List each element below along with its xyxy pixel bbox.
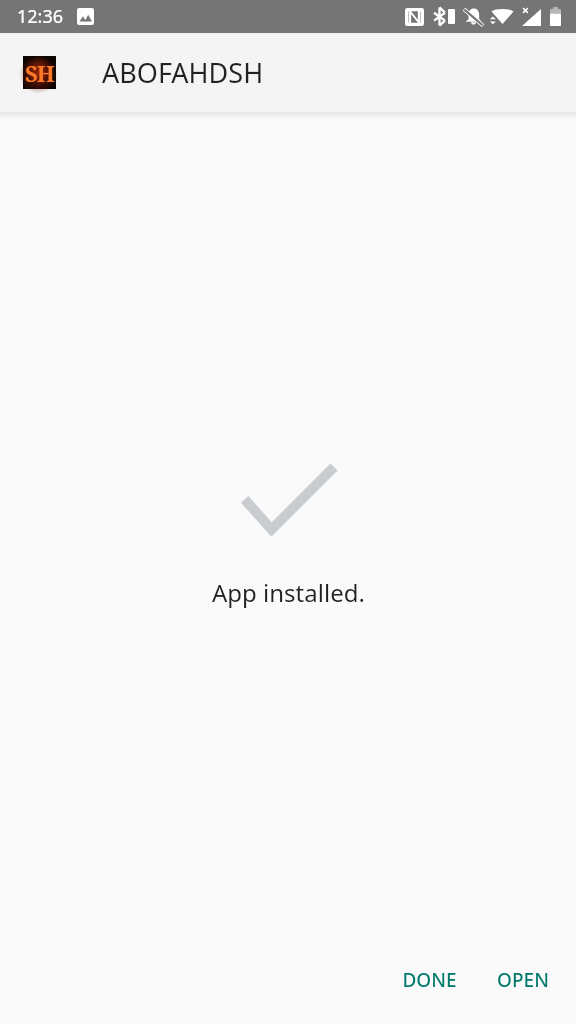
staticText: ABOFAHDSH <box>102 54 264 91</box>
other: Notifications silenced <box>464 7 483 26</box>
staticText: SH <box>25 58 54 88</box>
staticText: OPEN <box>497 967 549 993</box>
other: Battery level <box>550 7 561 26</box>
other: No mobile signal <box>522 8 541 26</box>
other: Bluetooth connected <box>433 7 455 26</box>
button[interactable]: DONE <box>386 958 473 1002</box>
other: Screenshot captured <box>77 8 94 25</box>
other: NFC enabled <box>405 8 424 26</box>
other: Wi-Fi connected <box>491 8 514 25</box>
staticText: DONE <box>402 967 457 993</box>
staticText: App installed. <box>212 576 365 609</box>
button[interactable]: OPEN <box>481 958 565 1002</box>
staticText: 12:36 <box>17 4 64 29</box>
button[interactable]: App icon <box>23 56 56 89</box>
